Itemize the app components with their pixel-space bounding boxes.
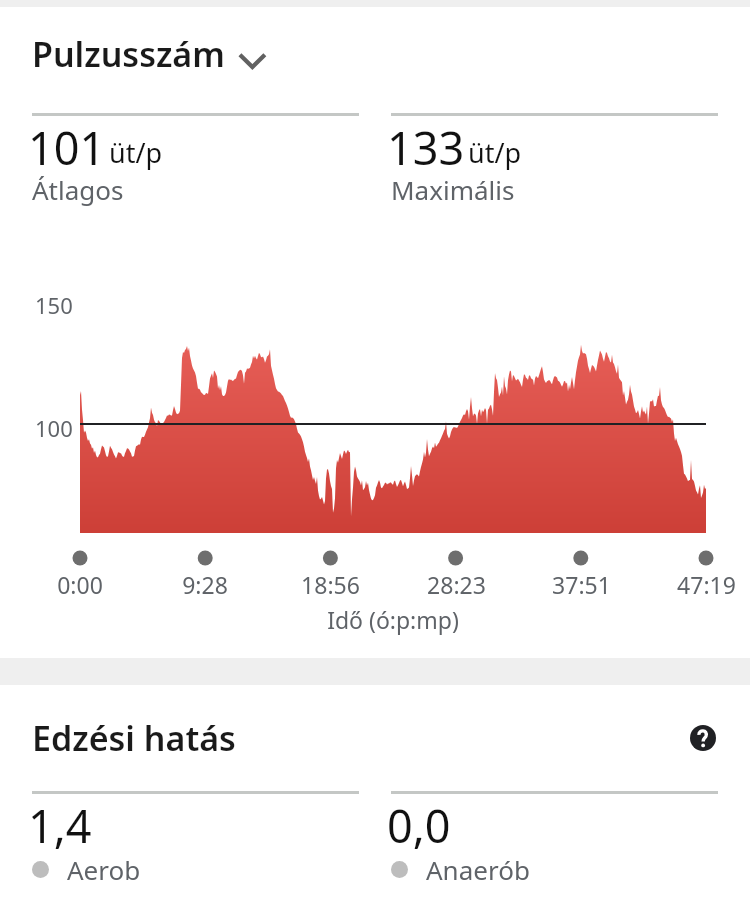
button[interactable]: Help — [682, 717, 724, 759]
staticText: 101 — [28, 117, 106, 178]
staticText: 37:51 — [552, 569, 611, 600]
staticText: 47:19 — [677, 569, 736, 600]
staticText: 100 — [35, 413, 73, 443]
staticText: 1,4 — [28, 795, 92, 856]
staticText: Anaerób — [426, 852, 530, 887]
staticText: Maximális — [391, 172, 515, 207]
staticText: 28:23 — [427, 569, 486, 600]
staticText: Idő (ó:p:mp) — [327, 604, 459, 635]
staticText: 0:00 — [57, 569, 103, 600]
staticText: Pulzusszám — [32, 31, 225, 77]
staticText: 150 — [35, 290, 73, 320]
staticText: Edzési hatás — [32, 715, 236, 761]
staticText: 133 — [387, 117, 465, 178]
staticText: Aerob — [67, 852, 141, 887]
staticText: üt/p — [468, 134, 522, 171]
button[interactable]: Pulzusszám — [0, 31, 750, 77]
staticText: 0,0 — [387, 795, 451, 856]
staticText: 9:28 — [182, 569, 228, 600]
staticText: 18:56 — [301, 569, 360, 600]
staticText: üt/p — [109, 134, 163, 171]
staticText: Átlagos — [32, 172, 124, 207]
